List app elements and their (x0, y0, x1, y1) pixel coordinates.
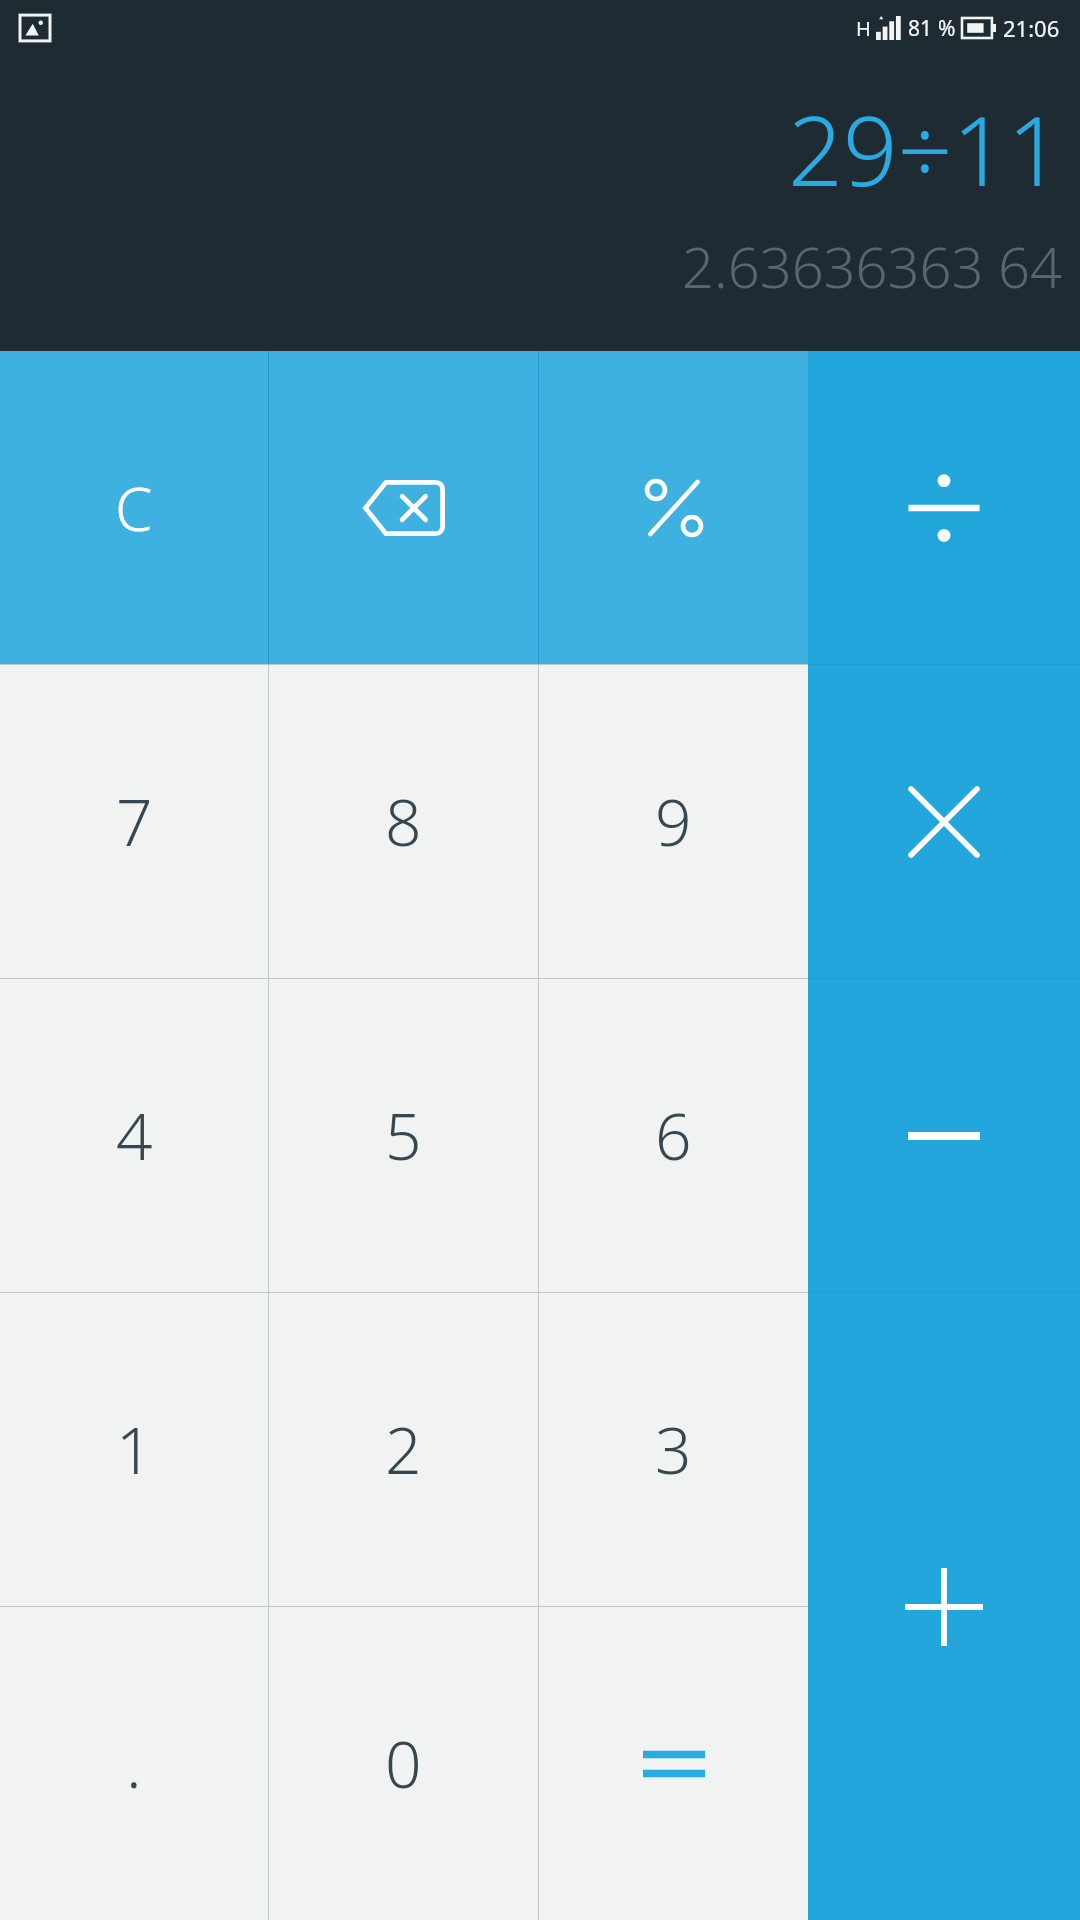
button[interactable]: 6 (539, 979, 808, 1292)
staticText: 5 (385, 1092, 422, 1179)
button[interactable]: 9 (539, 665, 808, 978)
staticText: 4 (116, 1092, 153, 1179)
staticText: 0 (385, 1720, 422, 1807)
button[interactable]: Add (808, 1293, 1080, 1920)
button[interactable]: Clear (0, 351, 268, 664)
button[interactable]: 4 (0, 979, 268, 1292)
staticText: H (856, 15, 871, 42)
staticText: 1 (116, 1406, 153, 1493)
staticText: 29÷11 (787, 83, 1062, 214)
button[interactable]: Percent (539, 351, 808, 664)
staticText: 9 (655, 778, 692, 865)
button[interactable]: 5 (269, 979, 538, 1292)
button[interactable]: Backspace (269, 351, 538, 664)
staticText: 6 (655, 1092, 692, 1179)
button[interactable]: 8 (269, 665, 538, 978)
staticText: . (126, 1720, 142, 1807)
staticText: 2.63636363 64 (682, 228, 1062, 304)
staticText: 7 (116, 778, 153, 865)
button[interactable]: 0 (269, 1607, 538, 1920)
button[interactable]: 3 (539, 1293, 808, 1606)
staticText: 21:06 (1003, 13, 1060, 43)
staticText: % (938, 14, 956, 43)
button[interactable]: Equals (539, 1607, 808, 1920)
button[interactable]: 2 (269, 1293, 538, 1606)
staticText: C (115, 467, 153, 549)
staticText: 3 (655, 1406, 692, 1493)
button[interactable]: Subtract (808, 979, 1080, 1292)
button[interactable]: Decimal point (0, 1607, 268, 1920)
staticText: 8 (385, 778, 422, 865)
button[interactable]: Multiply (808, 665, 1080, 978)
staticText: 2 (385, 1406, 422, 1493)
button[interactable]: 1 (0, 1293, 268, 1606)
button[interactable]: Divide (808, 351, 1080, 664)
button[interactable]: 7 (0, 665, 268, 978)
staticText: 81 (908, 14, 933, 43)
